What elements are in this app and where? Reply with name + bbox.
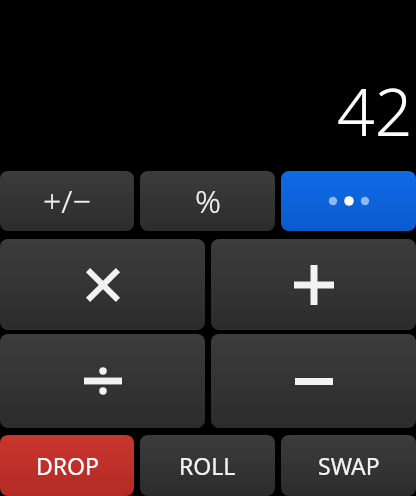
button[interactable]: ROLL	[140, 435, 275, 496]
button[interactable]: SWAP	[281, 435, 416, 496]
button[interactable]: Multiply	[0, 239, 205, 330]
staticText: ROLL	[179, 450, 236, 481]
button[interactable]: Divide	[0, 334, 205, 428]
button[interactable]: DROP	[0, 435, 134, 496]
button[interactable]: +/−	[0, 171, 134, 231]
button[interactable]: Add	[211, 239, 416, 330]
button[interactable]: More options	[281, 171, 416, 231]
staticText: SWAP	[318, 450, 380, 481]
button[interactable]: Subtract	[211, 334, 416, 428]
staticText: 42	[337, 65, 413, 155]
staticText: DROP	[36, 450, 99, 481]
staticText: +/−	[43, 179, 91, 223]
button[interactable]: %	[140, 171, 275, 231]
staticText: %	[195, 179, 221, 223]
